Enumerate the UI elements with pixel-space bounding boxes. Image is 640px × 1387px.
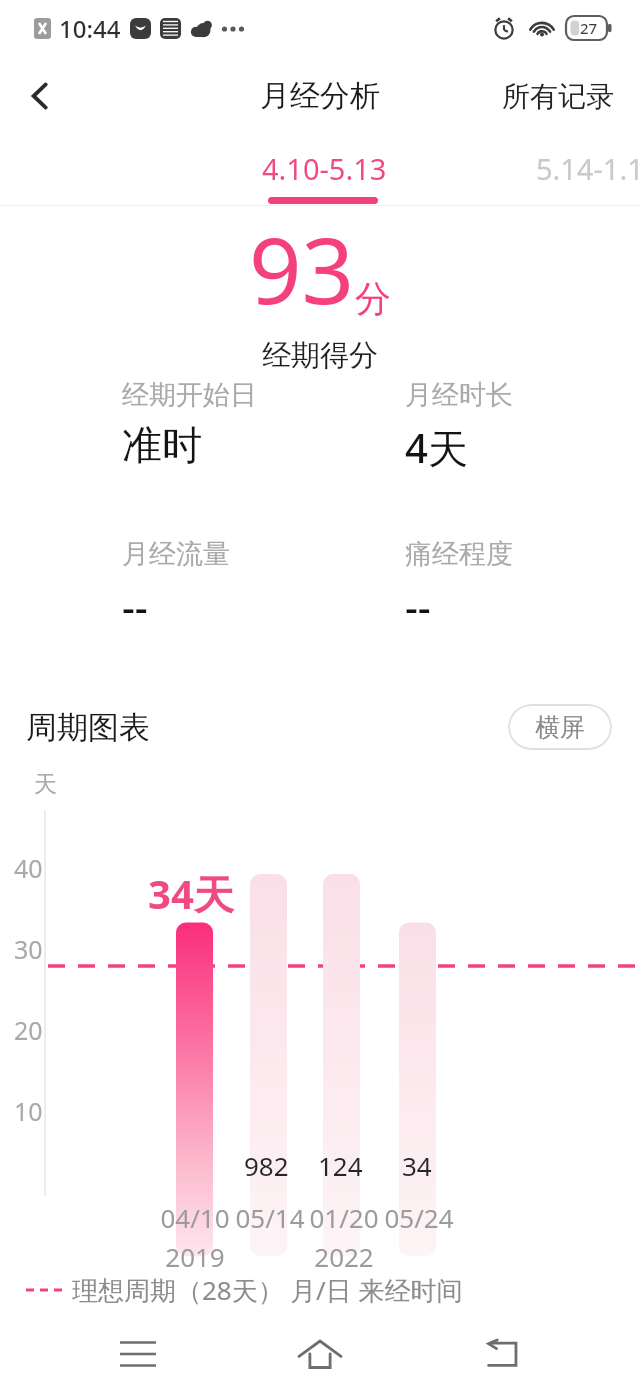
button[interactable]: 横屏 [508, 704, 612, 750]
staticText: -- [405, 579, 431, 633]
staticText: 痛经程度 [405, 537, 513, 571]
button[interactable]: 5.14-1.1 [530, 136, 640, 205]
staticText: 所有记录 [502, 79, 614, 114]
staticText: 横屏 [535, 712, 585, 743]
staticText: 04/10 [160, 1200, 230, 1235]
staticText: -- [122, 579, 148, 633]
staticText: 27 [580, 18, 598, 38]
staticText: 准时 [122, 420, 202, 470]
button[interactable]: 月经流量 [122, 537, 405, 633]
staticText: 4天 [405, 420, 468, 475]
staticText: 01/20 [309, 1200, 379, 1235]
staticText: 34天 [148, 866, 234, 921]
staticText: 34 [402, 1148, 432, 1183]
staticText: 经期得分 [262, 337, 378, 374]
button[interactable]: 4.10-5.13 [256, 136, 392, 205]
staticText: 30 [14, 932, 43, 966]
button[interactable]: 痛经程度 [405, 537, 640, 633]
staticText: 10 [14, 1094, 43, 1128]
staticText: 经期开始日 [122, 378, 257, 412]
staticText: 93 [249, 206, 355, 331]
staticText: 理想周期（28天） [72, 1272, 284, 1308]
staticText: 月经时长 [405, 378, 513, 412]
staticText: 月经分析 [260, 77, 380, 115]
staticText: 5.14-1.1 [536, 149, 640, 188]
button[interactable]: 所有记录 [488, 67, 628, 126]
staticText: 05/24 [384, 1200, 454, 1235]
staticText: 月经流量 [122, 537, 230, 571]
staticText: 124 [318, 1148, 363, 1183]
staticText: 20 [14, 1013, 43, 1047]
staticText: 2019 [165, 1239, 225, 1274]
staticText: 周期图表 [26, 708, 150, 747]
staticText: 分 [355, 276, 391, 321]
staticText: 2022 [314, 1239, 374, 1274]
button[interactable]: Recent apps [93, 1324, 183, 1384]
button[interactable]: 月经时长 [405, 378, 640, 475]
button[interactable]: Back [458, 1324, 548, 1384]
button[interactable]: 经期开始日 [122, 378, 405, 470]
staticText: 10:44 [59, 12, 121, 45]
staticText: 天 [34, 770, 57, 799]
staticText: 4.10-5.13 [262, 149, 387, 188]
staticText: 05/14 [235, 1200, 305, 1235]
button[interactable]: Home [275, 1324, 365, 1384]
staticText: 982 [244, 1148, 289, 1183]
button[interactable]: Back [10, 66, 70, 126]
staticText: 40 [14, 851, 43, 885]
staticText: 月/日 来经时间 [290, 1272, 463, 1308]
